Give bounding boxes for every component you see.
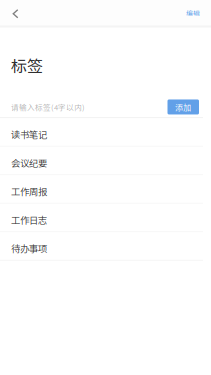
button[interactable]: 工作日志 [0, 204, 211, 232]
staticText: 工作日志 [11, 213, 47, 226]
button[interactable]: 添加 [167, 99, 199, 114]
staticText: 待办事项 [11, 241, 47, 255]
button[interactable]: 读书笔记 [0, 118, 211, 147]
button[interactable]: 会议纪要 [0, 147, 211, 175]
staticText: 读书笔记 [11, 127, 47, 141]
staticText: 编辑 [186, 8, 200, 18]
button[interactable]: Back [0, 0, 31, 25]
button[interactable]: 待办事项 [0, 232, 211, 261]
staticText: 请输入标签(4字以内) [11, 101, 85, 112]
button[interactable]: 工作周报 [0, 175, 211, 204]
staticText: 会议纪要 [11, 156, 47, 169]
staticText: 工作周报 [11, 184, 47, 198]
staticText: 标签 [11, 53, 43, 77]
button[interactable]: 编辑 [186, 0, 211, 25]
staticText: 添加 [175, 101, 191, 113]
